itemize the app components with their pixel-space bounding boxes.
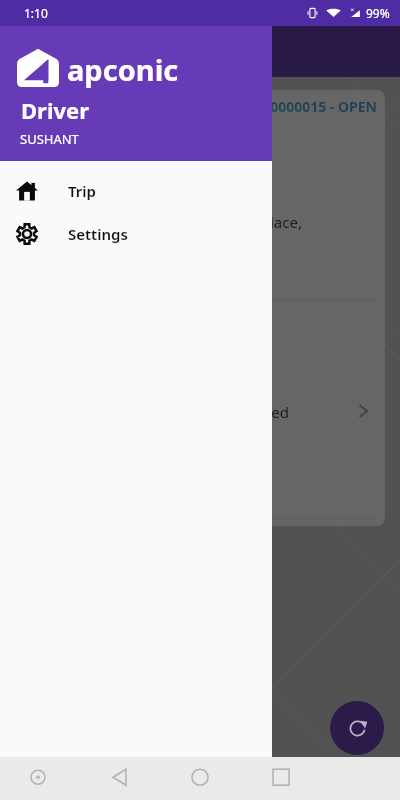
button[interactable]: TRIP NO : 0000015 - OPEN bbox=[15, 90, 385, 526]
staticText: Your trip has not yet been completed bbox=[28, 402, 289, 422]
button[interactable]: Refresh bbox=[330, 701, 384, 755]
button[interactable]: Settings bbox=[0, 212, 272, 255]
staticText: Driver bbox=[21, 95, 90, 125]
staticText: Trip bbox=[68, 181, 96, 201]
button[interactable]: Trip bbox=[0, 169, 272, 212]
staticText: Settings bbox=[68, 224, 128, 244]
staticText: Pickup the goods from the given place, bbox=[28, 212, 302, 232]
staticText: TRIP NO : 0000015 - OPEN bbox=[15, 97, 377, 116]
staticText: 99% bbox=[366, 5, 390, 21]
staticText: SUSHANT bbox=[20, 130, 79, 148]
staticText: apconic bbox=[67, 50, 179, 89]
staticText: 1:10 bbox=[24, 5, 48, 21]
